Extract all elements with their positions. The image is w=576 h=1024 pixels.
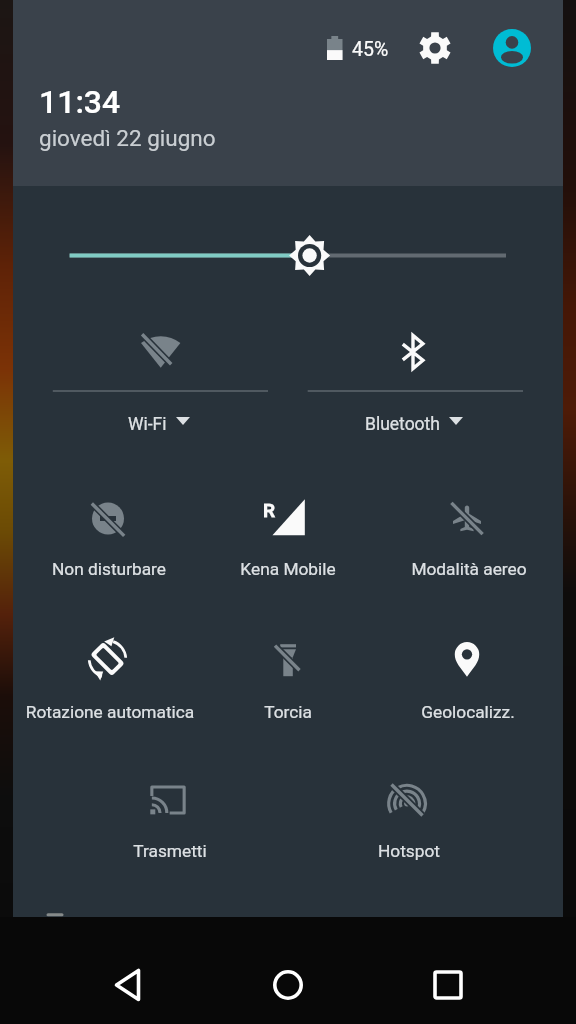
staticText: R [263,499,275,521]
staticText: Trasmetti [81,841,259,861]
staticText: Non disturbare [20,559,198,579]
button[interactable]: Indietro [78,945,178,1024]
button[interactable]: Utente [484,20,540,76]
staticText: Kena Mobile [199,559,377,579]
button[interactable]: Modalità aereo [380,470,558,590]
staticText: Wi-Fi [128,414,167,435]
staticText: Bluetooth [365,414,440,435]
staticText: Rotazione automatica [21,702,199,722]
button[interactable]: Wi-Fi [48,180,288,340]
staticText: giovedì 22 giugno [39,125,216,151]
button[interactable]: 11:34 [13,78,563,160]
button[interactable]: Rotazione automatica [21,612,199,732]
button[interactable]: Geolocalizz. [379,612,557,732]
button[interactable]: Home [238,945,338,1024]
staticText: Geolocalizz. [379,702,557,722]
button[interactable]: Kena Mobile [199,470,377,590]
staticText: Modalità aereo [380,559,558,579]
staticText: Torcia [199,702,377,722]
button[interactable]: Bluetooth [285,435,525,595]
button[interactable]: Impostazioni [407,20,463,76]
button[interactable]: Hotspot [320,753,498,873]
staticText: Hotspot [320,841,498,861]
button[interactable]: Non disturbare [20,470,198,590]
staticText: 11:34 [39,83,121,121]
button[interactable]: Trasmetti [81,753,259,873]
button[interactable]: Torcia [199,612,377,732]
button[interactable]: App recenti [398,945,498,1024]
staticText: 45% [352,38,389,61]
